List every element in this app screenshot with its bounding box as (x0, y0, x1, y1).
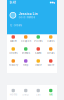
button[interactable]: Coupon (19, 33, 32, 45)
button[interactable]: Home (7, 85, 19, 100)
staticText: Help (23, 64, 29, 67)
staticText: Home (10, 93, 17, 96)
staticText: 12 Orders (10, 24, 22, 27)
staticText: Me (49, 93, 52, 96)
button[interactable]: Friends (19, 45, 32, 57)
staticText: Deals (47, 52, 54, 55)
staticText: ●●▮ (49, 1, 54, 4)
staticText: Jessica Lin (18, 12, 37, 16)
button[interactable]: Help (19, 57, 32, 69)
button[interactable]: More (44, 57, 57, 69)
staticText: Coupon (21, 40, 31, 43)
button[interactable]: Orders (7, 45, 19, 57)
staticText: Points (34, 40, 42, 43)
staticText: Saved (35, 52, 42, 55)
button[interactable]: Invite (32, 57, 44, 69)
staticText: Orders (9, 52, 17, 55)
staticText: More (48, 64, 54, 67)
button[interactable]: Cards (44, 33, 57, 45)
staticText: Wallet (10, 40, 17, 43)
staticText: Invite (35, 64, 41, 67)
button[interactable]: Wallet (7, 33, 19, 45)
button[interactable]: Shop (19, 85, 32, 100)
button[interactable]: History (7, 57, 19, 69)
staticText: Shop (22, 93, 29, 96)
button[interactable]: Points (32, 33, 44, 45)
staticText: Friends (22, 52, 30, 55)
staticText: Cart (36, 93, 41, 96)
staticText: 9:41 (9, 1, 15, 5)
button[interactable]: Me (44, 85, 57, 100)
staticText: Gold member (18, 16, 35, 19)
staticText: History (9, 64, 18, 67)
button[interactable]: Cart (32, 85, 44, 100)
button[interactable]: Saved (32, 45, 44, 57)
staticText: Cards (47, 40, 54, 43)
button[interactable]: Deals (44, 45, 57, 57)
